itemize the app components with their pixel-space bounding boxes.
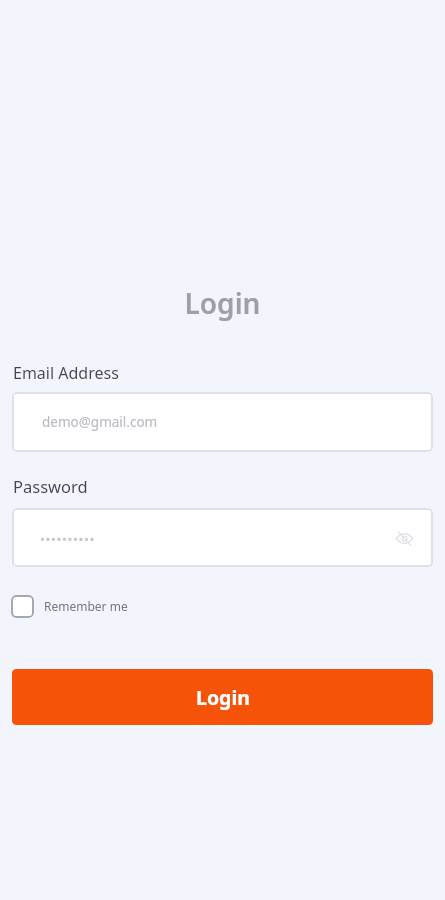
staticText: Email Address [13,362,119,384]
button[interactable]: Remember me [11,592,128,620]
button[interactable]: demo@gmail.com [12,392,433,452]
button[interactable]: Login [12,669,433,725]
button[interactable]: Show password [389,523,419,553]
staticText: Login [196,684,250,711]
staticText: Remember me [44,598,128,614]
staticText: Login [0,284,445,322]
staticText: Password [13,475,88,497]
button[interactable]: •••••••••• [12,508,433,567]
staticText: demo@gmail.com [42,413,158,431]
staticText: •••••••••• [40,530,95,548]
